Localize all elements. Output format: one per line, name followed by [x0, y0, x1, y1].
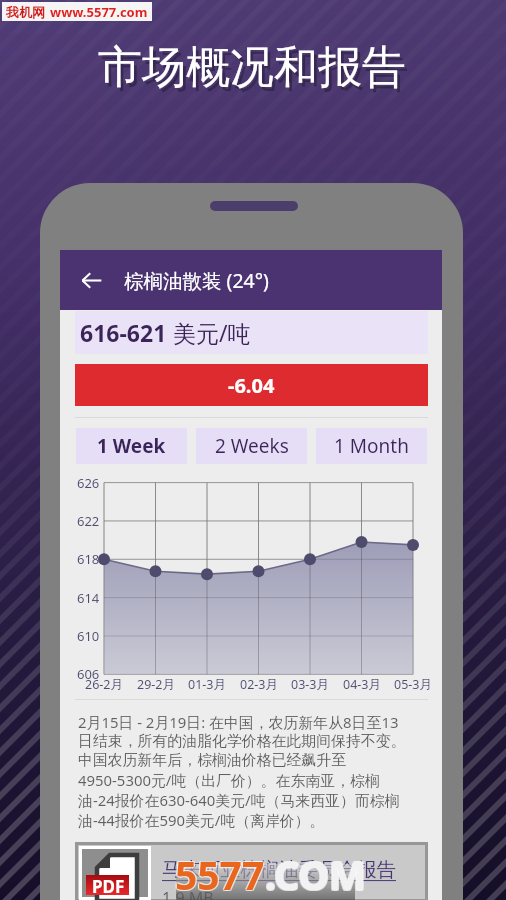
staticText: 01-3月	[188, 676, 226, 693]
staticText: 1 Month	[334, 433, 409, 459]
button[interactable]: -6.04	[75, 364, 428, 406]
staticText: 2月15日 - 2月19日: 在中国，农历新年从8日至13	[78, 712, 399, 732]
button[interactable]: PDF	[78, 845, 425, 899]
button[interactable]: 616-621	[75, 311, 428, 354]
staticText: .COM	[266, 847, 367, 900]
staticText: PDF	[92, 875, 125, 894]
staticText: 5577	[176, 848, 266, 900]
staticText: 5577	[174, 849, 264, 900]
button[interactable]: 1 Month	[316, 428, 427, 464]
staticText: 5577	[176, 847, 266, 900]
staticText: .COM	[265, 848, 366, 900]
staticText: 26-2月	[85, 676, 123, 693]
staticText: 606	[77, 665, 100, 683]
staticText: 5577	[175, 849, 265, 900]
staticText: 614	[77, 589, 100, 607]
staticText: .COM	[265, 847, 366, 900]
staticText: 04-3月	[343, 676, 381, 693]
staticText: 616-621	[80, 317, 173, 348]
staticText: 5577	[176, 849, 266, 900]
button[interactable]: 1 Week	[76, 428, 187, 464]
staticText: 市场概况和报告	[98, 40, 406, 95]
staticText: 1 Week	[97, 433, 166, 459]
staticText: .COM	[264, 847, 365, 900]
staticText: 4950-5300元/吨（出厂价）。在东南亚，棕榈	[78, 770, 380, 790]
staticText: 618	[77, 550, 100, 568]
staticText: 05-3月	[394, 676, 432, 693]
staticText: 油-24报价在630-640美元/吨（马来西亚）而棕榈	[78, 790, 400, 810]
staticText: 1.9 MB	[162, 887, 214, 900]
staticText: 马来西亚棕榈油委员会报告	[162, 857, 396, 882]
staticText: 2 Weeks	[215, 433, 289, 459]
staticText: .COM	[266, 849, 367, 900]
staticText: 5577	[175, 847, 265, 900]
staticText: 我机网	[6, 4, 45, 20]
staticText: 市场概况和报告	[101, 44, 409, 99]
staticText: 03-3月	[291, 676, 329, 693]
staticText: 622	[77, 512, 100, 530]
staticText: 日结束，所有的油脂化学价格在此期间保持不变。	[78, 732, 406, 751]
button[interactable]: 2 Weeks	[196, 428, 307, 464]
staticText: .COM	[265, 849, 366, 900]
staticText: 棕榈油散装 (24°)	[124, 267, 269, 294]
staticText: 油-44报价在590美元/吨（离岸价）。	[78, 810, 325, 830]
staticText: 5577	[174, 848, 264, 900]
button[interactable]: Back	[60, 250, 122, 310]
staticText: 02-3月	[240, 676, 278, 693]
staticText: 29-2月	[137, 676, 175, 693]
staticText: 5577	[175, 848, 265, 900]
staticText: -6.04	[228, 372, 275, 399]
staticText: 中国农历新年后，棕榈油价格已经飙升至	[78, 751, 347, 770]
staticText: .COM	[264, 849, 365, 900]
staticText: .COM	[264, 848, 365, 900]
staticText: 610	[77, 627, 100, 645]
staticText: 5577	[174, 847, 264, 900]
button[interactable]: Back	[60, 250, 442, 310]
staticText: 美元/吨	[173, 317, 251, 348]
staticText: .COM	[266, 848, 367, 900]
staticText: 626	[77, 474, 100, 492]
staticText: www.5577.com	[50, 3, 148, 21]
